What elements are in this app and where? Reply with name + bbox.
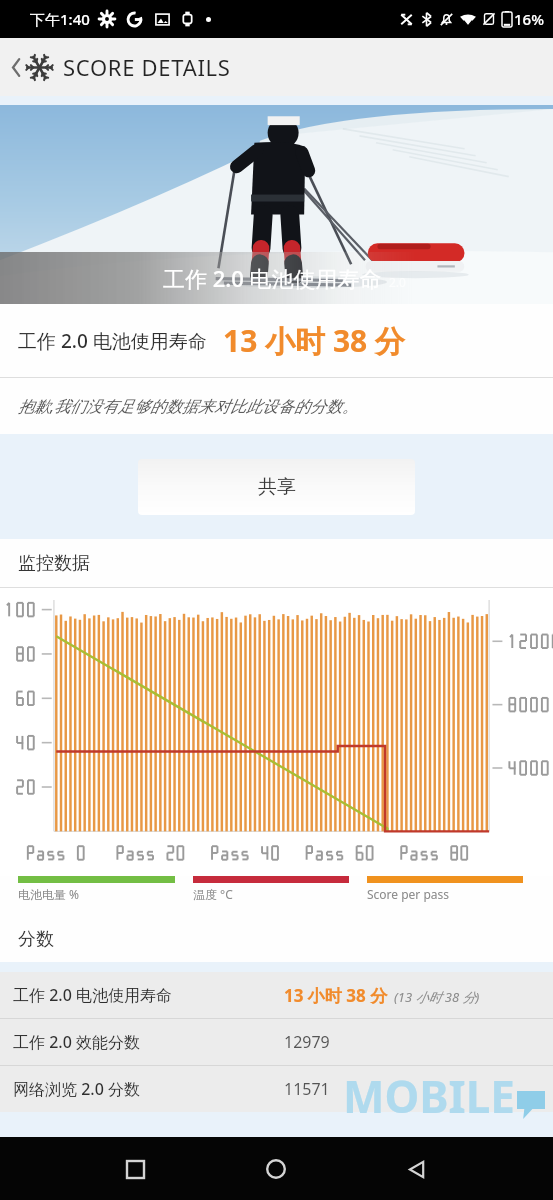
staticText: 工作 2.0 电池使用寿命 [18, 328, 207, 354]
staticText: 网络浏览 2.0 分数 [13, 1078, 140, 1100]
button[interactable]: 共享 [138, 459, 415, 515]
staticText: 监控数据 [18, 552, 90, 575]
button[interactable]: Home [252, 1145, 300, 1193]
staticText: 工作 2.0 效能分数 [13, 1031, 140, 1053]
button[interactable]: 工作 2.0 效能分数 [0, 1019, 553, 1065]
staticText: SCORE DETAILS [63, 52, 231, 82]
staticText: 电池电量 % [18, 886, 80, 902]
staticText: 工作 2.0 电池使用寿命 [163, 263, 382, 293]
staticText: 工作 2.0 电池使用寿命 [13, 984, 172, 1006]
staticText: 温度 °C [193, 886, 233, 902]
button[interactable]: Recent apps [111, 1145, 159, 1193]
staticText: 13 小时 38 分 [284, 984, 388, 1007]
staticText: 下午1:40 [30, 9, 90, 29]
staticText: Score per pass [367, 886, 450, 902]
staticText: 11571 [284, 1078, 330, 1100]
staticText: 分数 [18, 928, 54, 951]
staticText: (13 小时 38 分) [394, 988, 480, 1006]
staticText: 13 小时 38 分 [223, 320, 406, 361]
staticText: MOBILE [343, 1066, 515, 1126]
staticText: 2.0 [389, 274, 406, 290]
staticText: 12979 [284, 1031, 330, 1053]
staticText: 16% [514, 9, 544, 29]
button[interactable]: 工作 2.0 电池使用寿命 [0, 972, 553, 1018]
button[interactable]: Back to score details [6, 47, 236, 87]
staticText: 抱歉,我们没有足够的数据来对比此设备的分数。 [18, 395, 359, 417]
button[interactable]: 网络浏览 2.0 分数 [0, 1066, 553, 1112]
button[interactable]: Back [393, 1145, 441, 1193]
staticText: 共享 [258, 475, 296, 499]
